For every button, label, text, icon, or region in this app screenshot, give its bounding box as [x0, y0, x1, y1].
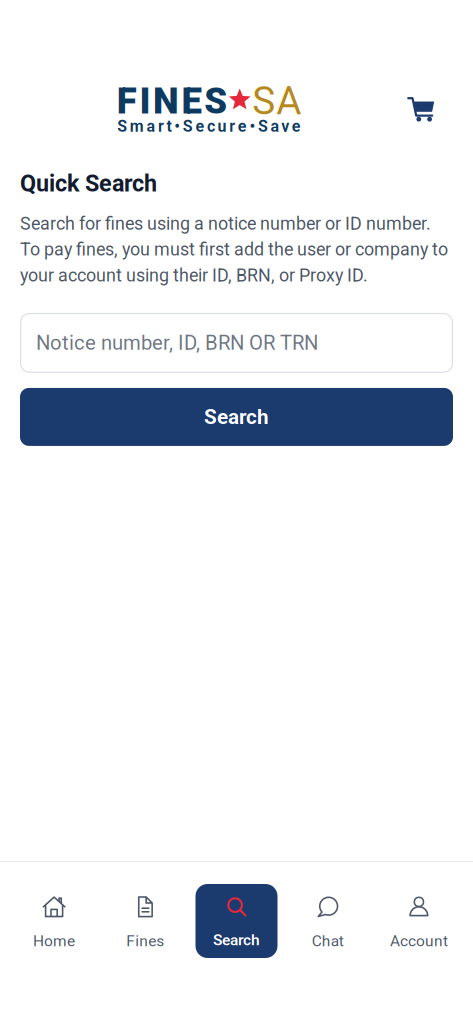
staticText: your account using their ID, BRN, or Pro… — [20, 265, 368, 286]
staticText: FINES — [117, 80, 227, 122]
staticText: To pay fines, you must first add the use… — [20, 239, 448, 260]
staticText: Chat — [312, 932, 344, 950]
button[interactable]: Fines — [104, 884, 186, 958]
button[interactable]: Search — [195, 884, 277, 958]
button[interactable]: Account — [378, 884, 460, 958]
button[interactable]: Home — [13, 884, 95, 958]
button[interactable]: Cart — [407, 87, 473, 122]
staticText: Fines — [126, 932, 164, 950]
staticText: SA — [252, 78, 301, 124]
staticText: Account — [390, 932, 448, 950]
staticText: Search for fines using a notice number o… — [20, 213, 431, 234]
staticText: Smart•Secure•Save — [117, 117, 301, 136]
staticText: Search — [204, 405, 269, 429]
staticText: Quick Search — [20, 170, 157, 197]
staticText: Notice number, ID, BRN OR TRN — [36, 331, 318, 355]
staticText: Search — [213, 931, 260, 949]
staticText: Home — [33, 932, 75, 950]
button[interactable]: Chat — [287, 884, 369, 958]
button[interactable]: Search — [20, 388, 453, 446]
